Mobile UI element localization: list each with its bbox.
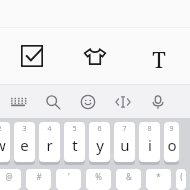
staticText: % (95, 171, 102, 182)
button[interactable]: Keyboard (0, 85, 35, 118)
button[interactable]: Style (63, 28, 127, 84)
staticText: u (120, 135, 130, 155)
staticText: * (156, 171, 161, 182)
button[interactable]: 5 (64, 122, 85, 164)
button[interactable]: * (146, 169, 171, 190)
button[interactable]: @ (0, 169, 21, 190)
staticText: r (46, 135, 53, 155)
button[interactable]: Search (35, 85, 70, 118)
staticText: # (36, 171, 42, 182)
button[interactable]: ' (56, 169, 81, 190)
staticText: e (20, 135, 29, 155)
button[interactable]: Voice input (140, 85, 175, 118)
button[interactable]: Emoji (70, 85, 105, 118)
staticText: ( (180, 171, 183, 182)
button[interactable]: 4 (39, 122, 60, 164)
staticText: 2 (0, 124, 2, 134)
button[interactable]: % (86, 169, 111, 190)
button[interactable]: 9 (164, 122, 179, 164)
staticText: t (72, 135, 78, 155)
button[interactable]: ( (176, 169, 186, 190)
staticText: 9 (169, 124, 174, 134)
staticText: y (96, 135, 104, 155)
button[interactable]: Checklist (0, 28, 63, 84)
staticText: w (0, 135, 6, 155)
staticText: T (152, 44, 166, 68)
staticText: 8 (147, 124, 152, 134)
button[interactable]: 2 (0, 122, 10, 164)
staticText: ' (68, 171, 70, 182)
staticText: @ (5, 171, 13, 182)
button[interactable]: 8 (139, 122, 160, 164)
button[interactable]: 7 (114, 122, 135, 164)
button[interactable]: & (116, 169, 141, 190)
staticText: & (126, 171, 132, 182)
staticText: o (167, 135, 177, 155)
button[interactable]: Move cursor (105, 85, 140, 118)
staticText: 4 (47, 124, 52, 134)
button[interactable]: 6 (89, 122, 110, 164)
button[interactable]: 3 (14, 122, 35, 164)
button[interactable]: Text format (127, 28, 190, 84)
staticText: 7 (122, 124, 127, 134)
staticText: i (148, 135, 152, 155)
staticText: 6 (97, 124, 102, 134)
button[interactable]: # (26, 169, 51, 190)
staticText: 5 (72, 124, 77, 134)
staticText: 3 (22, 124, 27, 134)
